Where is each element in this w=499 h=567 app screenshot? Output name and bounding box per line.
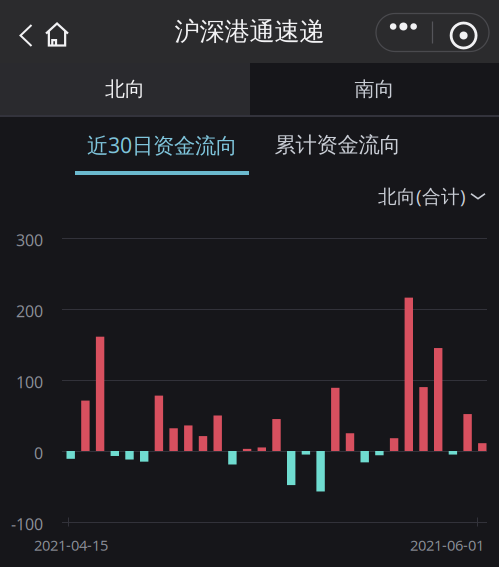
staticText: -100 xyxy=(11,513,43,535)
button[interactable]: 北向 xyxy=(0,63,250,115)
staticText: 0 xyxy=(34,442,43,464)
staticText: 近30日资金流向 xyxy=(87,131,237,159)
button[interactable]: 累计资金流向 xyxy=(250,117,499,175)
staticText: 2021-06-01 xyxy=(410,535,484,555)
button[interactable]: Home xyxy=(42,8,80,54)
staticText: 300 xyxy=(16,229,43,251)
button[interactable]: More xyxy=(375,14,432,51)
staticText: 100 xyxy=(16,371,43,393)
button[interactable]: Close xyxy=(433,14,490,51)
staticText: 2021-04-15 xyxy=(34,535,108,555)
staticText: 沪深港通速递 xyxy=(174,16,324,47)
button[interactable]: 南向 xyxy=(250,63,499,115)
button[interactable]: 近30日资金流向 xyxy=(0,117,250,175)
staticText: 北向(合计) xyxy=(378,184,466,208)
staticText: 北向 xyxy=(105,77,145,101)
button[interactable]: 北向(合计) xyxy=(378,180,499,212)
staticText: 200 xyxy=(16,300,43,322)
staticText: 累计资金流向 xyxy=(274,132,400,158)
staticText: 南向 xyxy=(354,77,394,101)
button[interactable]: Back xyxy=(6,8,42,54)
